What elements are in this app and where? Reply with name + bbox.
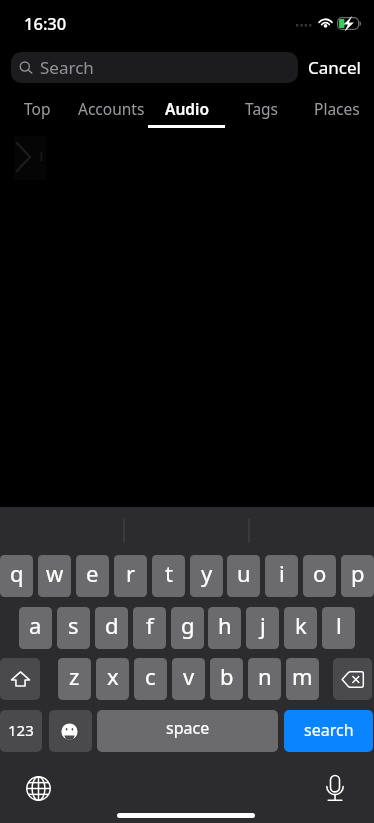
button[interactable]: q [0, 555, 33, 597]
staticText: j [260, 610, 266, 640]
staticText: t [165, 558, 173, 588]
staticText: h [218, 610, 232, 640]
staticText: k [295, 610, 307, 640]
button[interactable]: search [284, 710, 373, 752]
button[interactable]: Switch keyboard [22, 772, 54, 804]
staticText: x [107, 661, 119, 691]
button[interactable]: a [19, 607, 52, 649]
button[interactable]: Dictation [319, 772, 351, 804]
button[interactable]: f [133, 607, 166, 649]
staticText: f [146, 610, 154, 640]
staticText: a [29, 610, 42, 640]
staticText: r [126, 558, 136, 588]
button[interactable]: s [57, 607, 90, 649]
button[interactable]: Tags [224, 98, 299, 129]
staticText: m [292, 661, 313, 691]
staticText: q [10, 558, 24, 588]
button[interactable]: w [38, 555, 71, 597]
button[interactable]: t [152, 555, 185, 597]
staticText: u [237, 558, 251, 588]
staticText: 123 [8, 720, 34, 740]
button[interactable]: space [97, 710, 278, 752]
button[interactable]: z [58, 658, 91, 700]
staticText: Tags [245, 98, 279, 119]
button[interactable]: e [76, 555, 109, 597]
button[interactable]: Search [11, 52, 298, 83]
button[interactable]: c [134, 658, 167, 700]
staticText: space [166, 717, 210, 739]
button[interactable]: o [303, 555, 336, 597]
staticText: g [181, 610, 195, 640]
button[interactable]: k [284, 607, 317, 649]
staticText: z [69, 661, 80, 691]
button[interactable]: n [248, 658, 281, 700]
staticText: Places [314, 98, 360, 119]
button[interactable]: Cancel [302, 52, 367, 83]
staticText: w [46, 558, 64, 588]
button[interactable]: Top [0, 98, 74, 129]
button[interactable]: y [190, 555, 223, 597]
staticText: Search [40, 56, 94, 79]
button[interactable]: b [210, 658, 243, 700]
staticText: v [183, 661, 195, 691]
staticText: Accounts [78, 98, 145, 119]
button[interactable]: x [96, 658, 129, 700]
staticText: b [220, 661, 234, 691]
staticText: search [304, 719, 354, 741]
button[interactable]: d [95, 607, 128, 649]
staticText: d [105, 610, 119, 640]
staticText: o [313, 558, 327, 588]
staticText: Audio [165, 98, 209, 119]
button[interactable]: h [208, 607, 241, 649]
staticText: s [68, 610, 79, 640]
button[interactable]: i [265, 555, 298, 597]
staticText: Top [24, 98, 51, 119]
staticText: p [351, 558, 365, 588]
button[interactable]: Places [299, 98, 374, 129]
button[interactable]: Audio [149, 98, 224, 129]
staticText: y [201, 558, 213, 588]
staticText: c [145, 661, 156, 691]
button[interactable]: r [114, 555, 147, 597]
staticText: i [279, 558, 285, 588]
button[interactable]: j [246, 607, 279, 649]
staticText: 16:30 [24, 12, 67, 34]
button[interactable]: v [172, 658, 205, 700]
staticText: e [86, 558, 99, 588]
button[interactable]: m [286, 658, 319, 700]
staticText: l [336, 610, 342, 640]
button[interactable]: Accounts [74, 98, 149, 129]
button[interactable]: p [341, 555, 374, 597]
button[interactable]: u [227, 555, 260, 597]
staticText: n [258, 661, 272, 691]
button[interactable]: l [322, 607, 355, 649]
staticText: Cancel [308, 56, 361, 79]
button[interactable]: Shift [0, 658, 40, 700]
button[interactable]: 123 [0, 710, 42, 752]
button[interactable]: Emoji [49, 710, 92, 752]
button[interactable]: g [171, 607, 204, 649]
button[interactable]: Backspace [333, 658, 372, 700]
